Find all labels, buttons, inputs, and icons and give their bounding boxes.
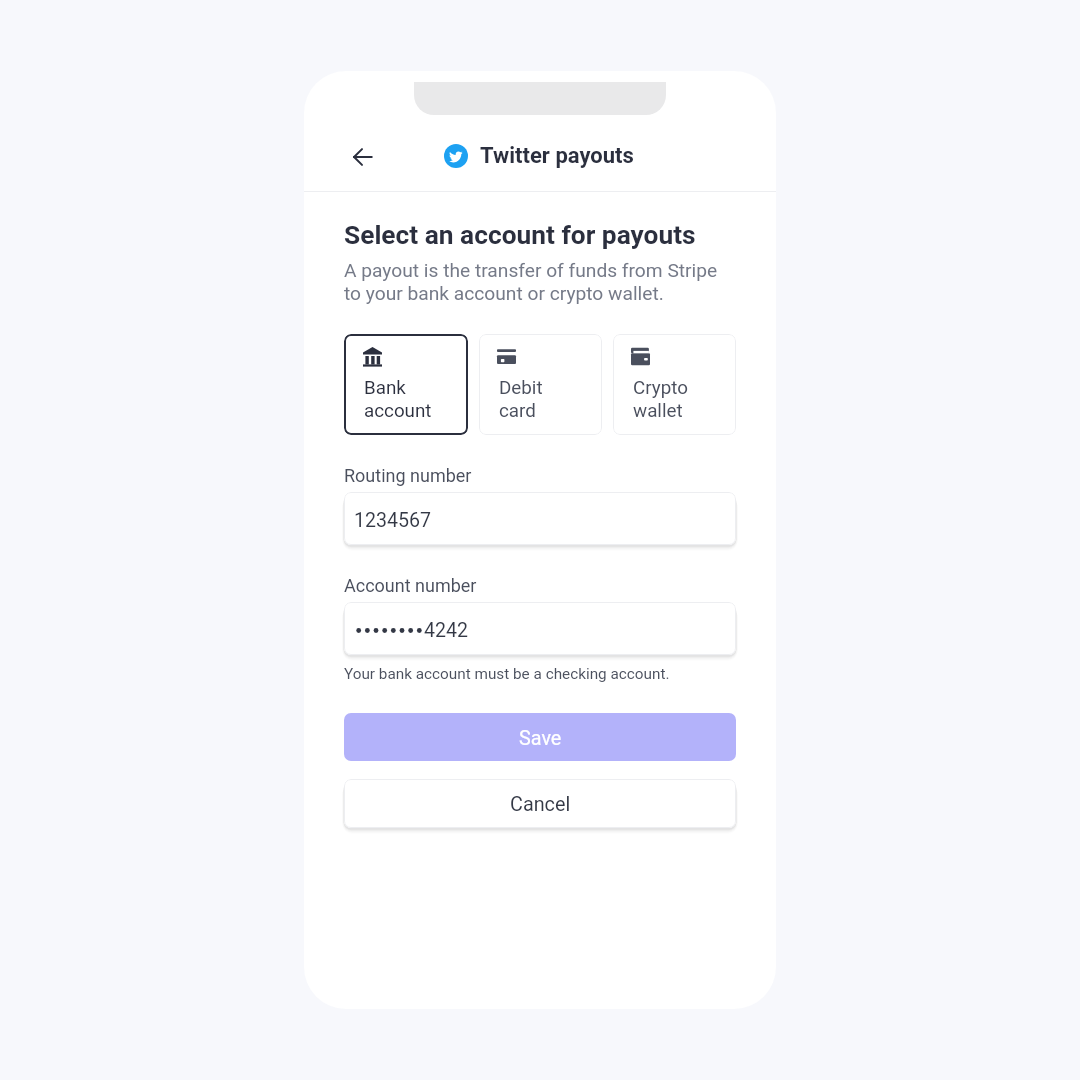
button[interactable]: Save [344,713,736,761]
staticText: Routing number [344,465,472,486]
button[interactable]: 1234567 [344,492,736,545]
button[interactable]: Debit card [479,334,602,435]
staticText: A payout is the transfer of funds from S… [344,259,718,305]
button[interactable]: 4242 [344,602,736,655]
staticText: Debit card [499,376,543,422]
staticText: 4242 [424,619,469,642]
staticText: Bank account [364,376,432,422]
button[interactable]: Bank account [344,334,468,435]
staticText: Twitter payouts [480,143,634,169]
button[interactable]: Back [348,142,377,171]
staticText: Select an account for payouts [344,220,696,251]
button[interactable]: Crypto wallet [613,334,736,435]
staticText: 1234567 [354,509,432,532]
staticText: Crypto wallet [633,376,688,422]
staticText: Save [519,727,562,750]
staticText: Account number [344,575,477,596]
button[interactable]: Cancel [344,779,736,828]
staticText: Your bank account must be a checking acc… [344,665,670,683]
staticText: Cancel [510,793,571,816]
